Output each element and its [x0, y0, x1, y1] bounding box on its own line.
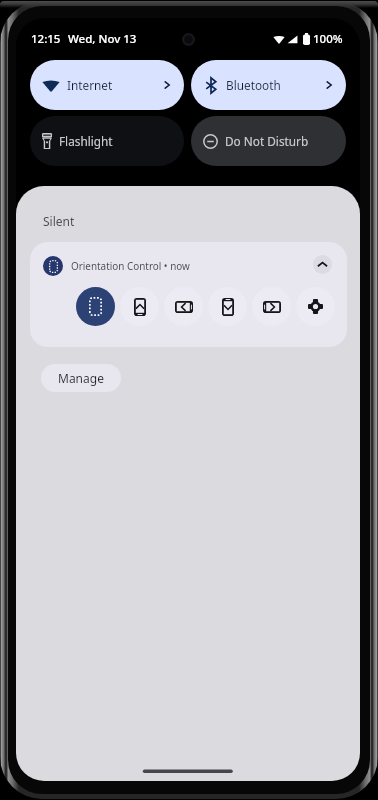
staticText: Do Not Disturb — [225, 133, 309, 149]
button[interactable]: Collapse notification — [313, 255, 332, 274]
button[interactable]: Internet — [30, 60, 184, 110]
button[interactable]: Auto rotate — [76, 287, 115, 326]
button[interactable]: Do Not Disturb — [191, 116, 346, 166]
button[interactable]: Landscape left — [164, 287, 203, 326]
staticText: 12:15 — [31, 31, 61, 47]
button[interactable]: Manage — [41, 364, 121, 392]
button[interactable]: Orientation Control • now — [30, 242, 347, 347]
staticText: Silent — [43, 213, 75, 229]
staticText: 100% — [313, 31, 343, 47]
staticText: Internet — [67, 77, 113, 93]
button[interactable]: Flashlight — [30, 116, 184, 166]
staticText: Flashlight — [59, 133, 113, 149]
button[interactable]: Settings — [296, 287, 335, 326]
staticText: Bluetooth — [226, 77, 281, 93]
button[interactable]: Portrait up — [120, 287, 159, 326]
button[interactable]: Portrait down — [208, 287, 247, 326]
staticText: Wed, Nov 13 — [68, 31, 137, 47]
button[interactable]: Landscape right — [252, 287, 291, 326]
staticText: Manage — [58, 370, 104, 386]
staticText: Orientation Control • now — [71, 259, 190, 272]
button[interactable]: Bluetooth — [191, 60, 346, 110]
